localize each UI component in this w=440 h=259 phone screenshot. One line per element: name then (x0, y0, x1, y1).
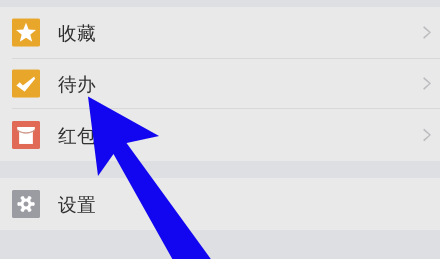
staticText: 设置 (58, 193, 96, 216)
staticText: 待办 (58, 73, 96, 96)
staticText: 红包 (58, 124, 96, 147)
staticText: 收藏 (58, 22, 96, 45)
button[interactable]: 待办 (0, 59, 440, 108)
button[interactable]: 红包 (0, 109, 440, 161)
button[interactable]: 设置 (0, 178, 440, 230)
button[interactable]: 收藏 (0, 7, 440, 58)
